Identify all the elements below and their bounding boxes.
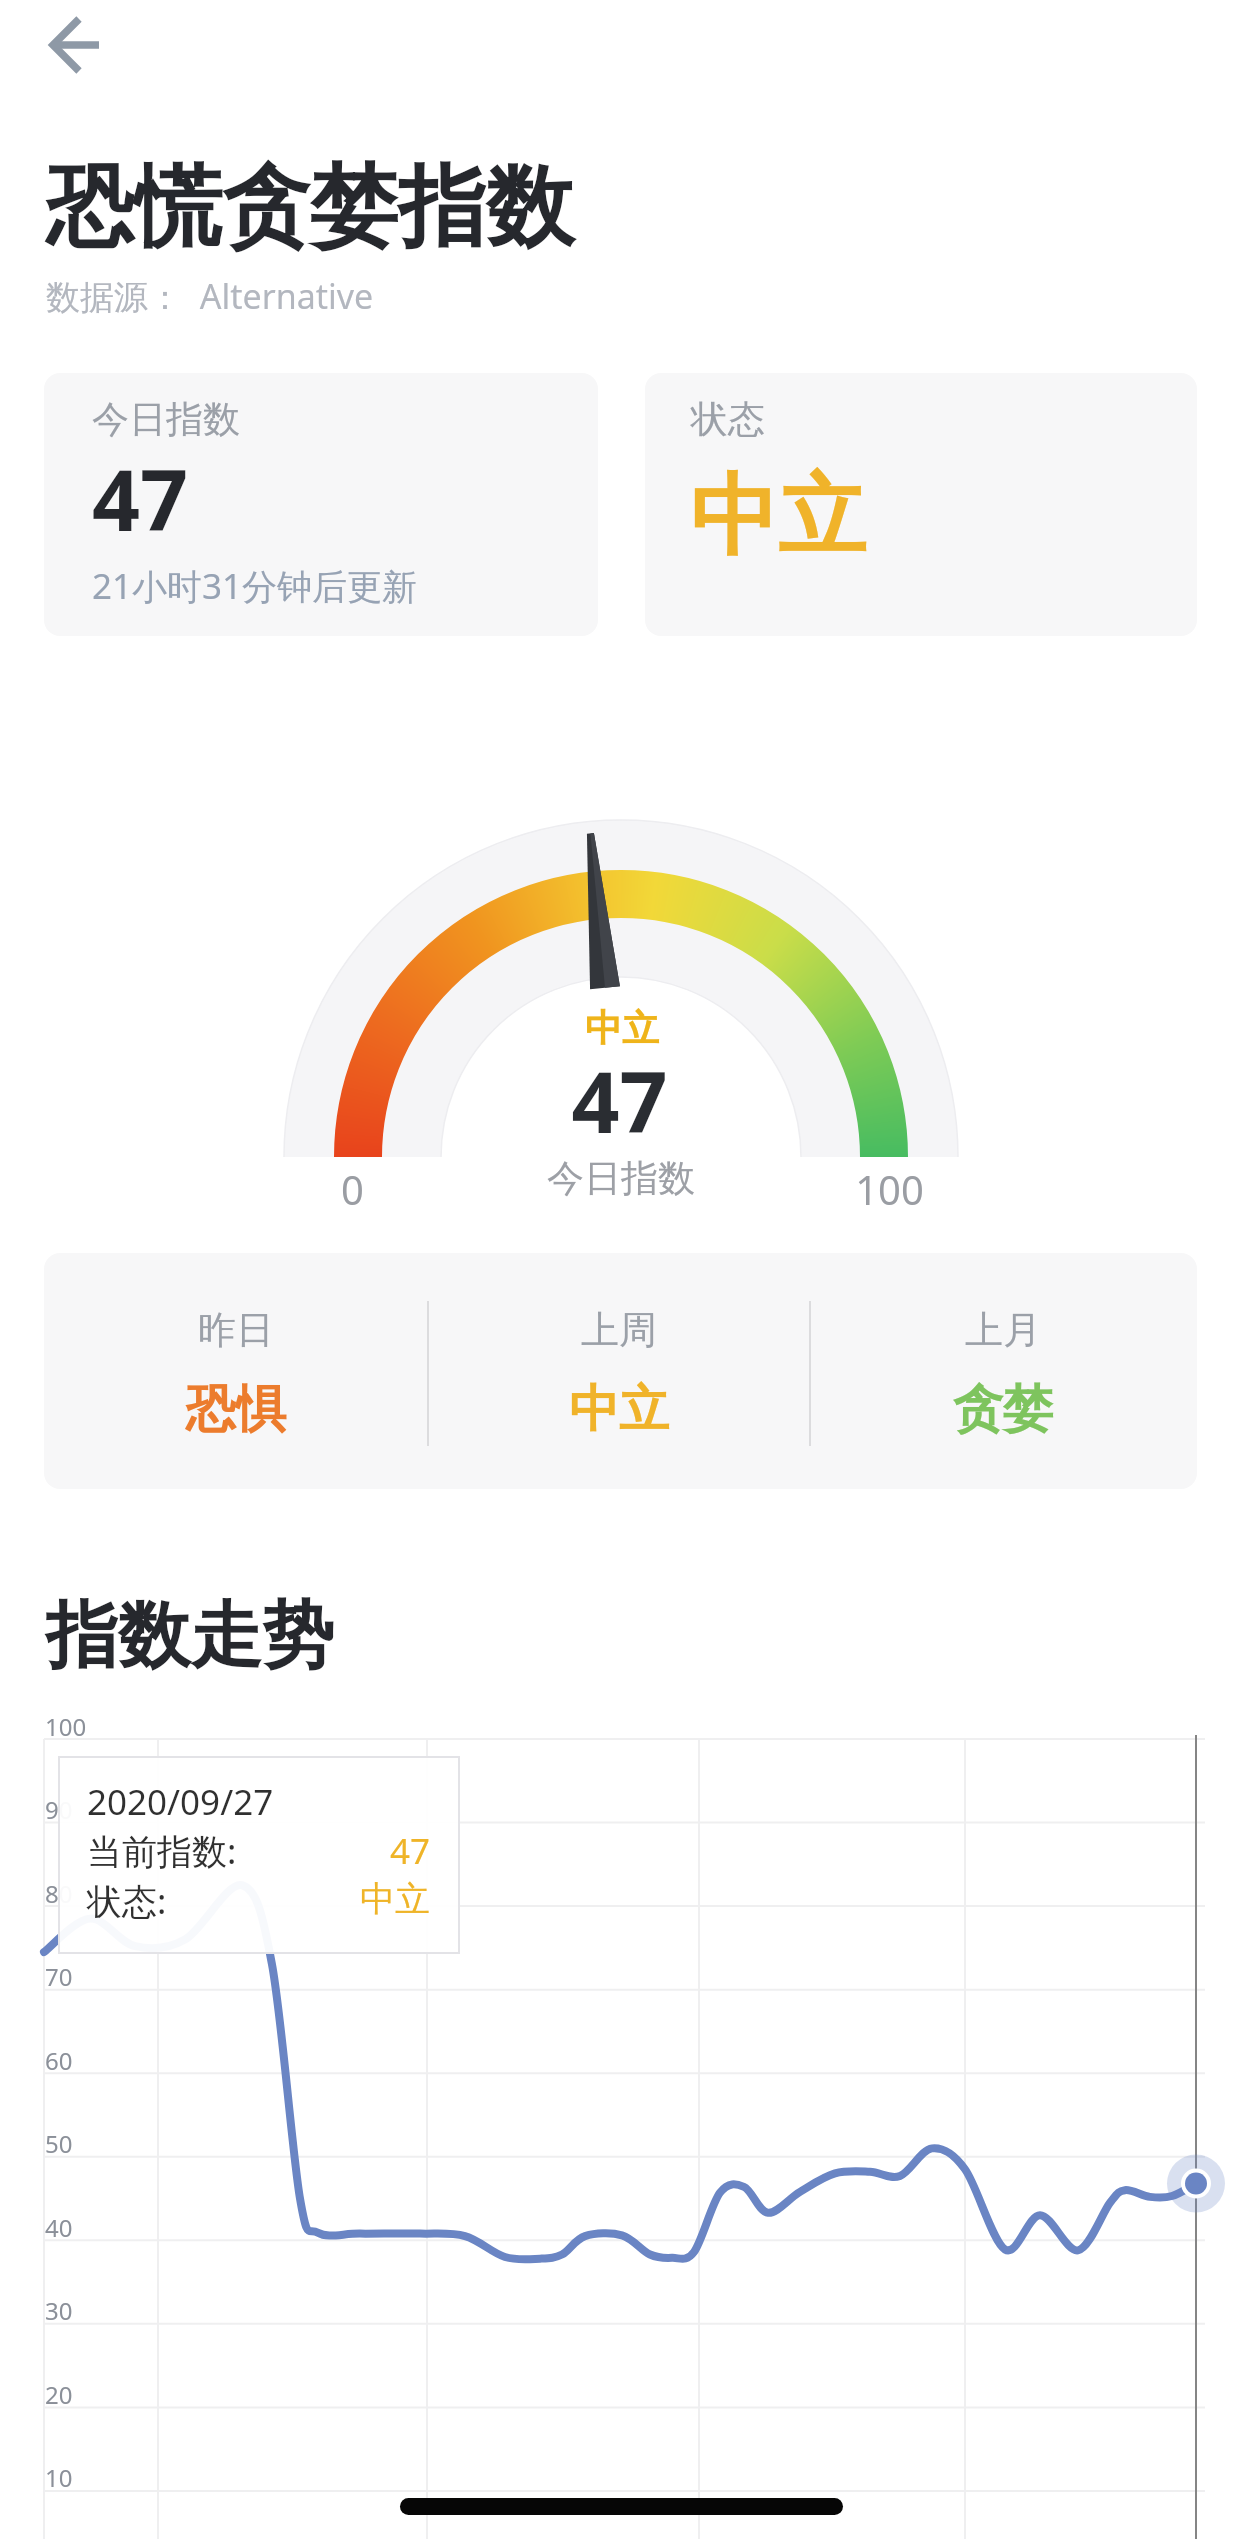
staticText: 60	[45, 2044, 73, 2077]
staticText: 21小时31分钟后更新	[92, 562, 418, 610]
staticText: 10	[45, 2461, 73, 2494]
button[interactable]: 恐惧	[136, 1378, 336, 1448]
staticText: 状态:	[87, 1877, 167, 1925]
button[interactable]: 贪婪	[903, 1378, 1103, 1448]
staticText: 昨日	[198, 1306, 274, 1354]
staticText: 恐惧	[186, 1378, 286, 1441]
button[interactable]	[59, 1757, 459, 1953]
staticText: 70	[45, 1960, 73, 1993]
button[interactable]	[40, 8, 112, 80]
staticText: 80	[45, 1877, 73, 1910]
staticText: 0	[341, 1162, 364, 1216]
staticText: 47	[389, 1827, 430, 1875]
staticText: 当前指数:	[87, 1827, 237, 1875]
staticText: 状态	[691, 396, 765, 443]
staticText: 90	[45, 1793, 73, 1826]
staticText: 中立	[360, 1877, 430, 1921]
staticText: 50	[45, 2127, 73, 2160]
staticText: 指数走势	[46, 1591, 334, 1682]
staticText: 贪婪	[953, 1378, 1053, 1441]
staticText: 中立	[690, 461, 866, 572]
staticText: 恐慌贪婪指数	[46, 152, 574, 263]
staticText: 100	[45, 1710, 87, 1743]
staticText: 中立	[569, 1378, 669, 1441]
staticText: 30	[45, 2294, 73, 2327]
staticText: 40	[45, 2211, 73, 2244]
button[interactable]	[44, 373, 598, 636]
button[interactable]: 中立	[519, 1378, 719, 1448]
staticText: 今日指数	[547, 1155, 695, 1202]
staticText: 47	[92, 441, 189, 555]
button[interactable]	[645, 373, 1197, 636]
staticText: 2020/09/27	[87, 1778, 274, 1826]
staticText: 数据源： Alternative	[46, 273, 374, 319]
staticText: 上月	[965, 1306, 1041, 1354]
staticText: 上周	[581, 1306, 657, 1354]
staticText: 20	[45, 2378, 73, 2411]
staticText: 100	[855, 1162, 924, 1216]
staticText: 47	[571, 1043, 668, 1157]
staticText: 今日指数	[92, 396, 240, 443]
staticText: 中立	[585, 1005, 659, 1052]
